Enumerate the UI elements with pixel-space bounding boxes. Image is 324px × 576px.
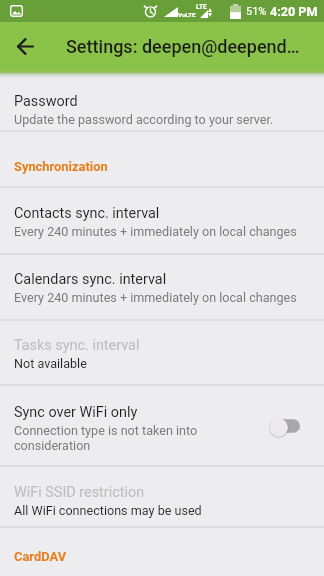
staticText: Every 240 minutes + immediately on local… — [14, 290, 297, 305]
staticText: VoLTE — [178, 11, 196, 18]
staticText: Calendars sync. interval — [14, 271, 167, 288]
button[interactable]: Sync over WiFi only — [0, 385, 324, 466]
button[interactable]: Navigate up — [0, 22, 50, 71]
staticText: Contacts sync. interval — [14, 205, 160, 222]
staticText: Settings: deepen@deepend… — [66, 36, 300, 57]
staticText: Not available — [14, 356, 87, 371]
button[interactable]: Contacts sync. interval — [0, 187, 324, 254]
staticText: Password — [14, 93, 78, 110]
staticText: LTE — [196, 3, 207, 11]
button[interactable]: Calendars sync. interval — [0, 254, 324, 320]
staticText: Update the password according to your se… — [14, 112, 274, 127]
staticText: CardDAV — [14, 549, 67, 564]
button[interactable]: WiFi SSID restriction — [0, 466, 324, 527]
staticText: Connection type is not taken into consid… — [14, 423, 252, 453]
button[interactable]: Sync over WiFi only — [263, 409, 307, 443]
staticText: Sync over WiFi only — [14, 404, 138, 421]
staticText: 4:20 PM — [270, 4, 318, 19]
staticText: Every 240 minutes + immediately on local… — [14, 224, 297, 239]
staticText: Tasks sync. interval — [14, 337, 140, 354]
staticText: Synchronization — [14, 159, 108, 174]
staticText: All WiFi connections may be used — [14, 503, 202, 518]
button[interactable]: Password — [0, 72, 324, 131]
staticText: 51% — [246, 5, 267, 18]
button[interactable]: Tasks sync. interval — [0, 320, 324, 385]
staticText: WiFi SSID restriction — [14, 484, 145, 501]
